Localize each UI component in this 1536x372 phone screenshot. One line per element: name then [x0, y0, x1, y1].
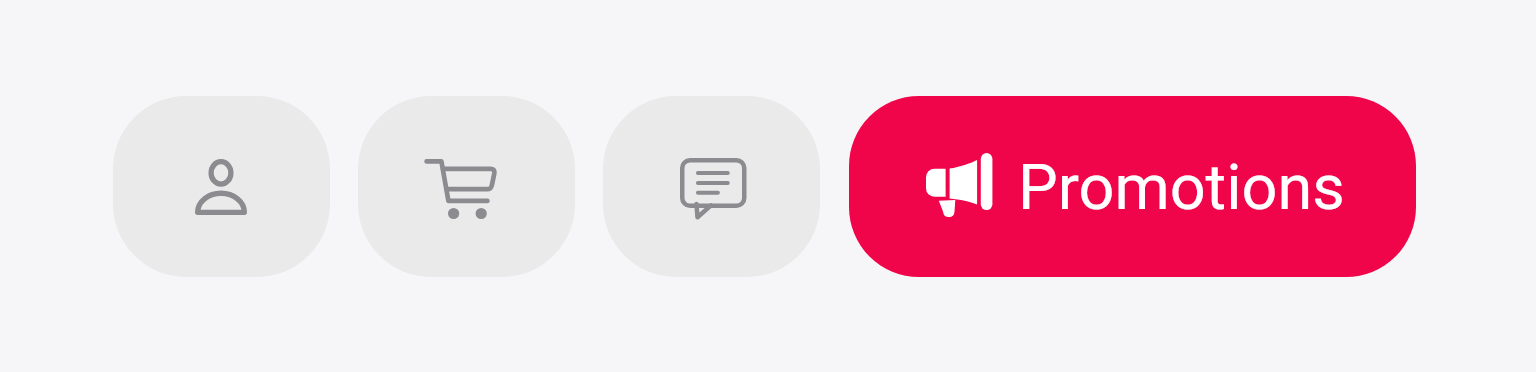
- button[interactable]: Promotions: [849, 96, 1416, 277]
- staticText: Promotions: [1018, 151, 1345, 225]
- button[interactable]: Shopping cart: [358, 96, 575, 277]
- button[interactable]: Profile: [113, 96, 330, 277]
- button[interactable]: Messages: [603, 96, 820, 277]
